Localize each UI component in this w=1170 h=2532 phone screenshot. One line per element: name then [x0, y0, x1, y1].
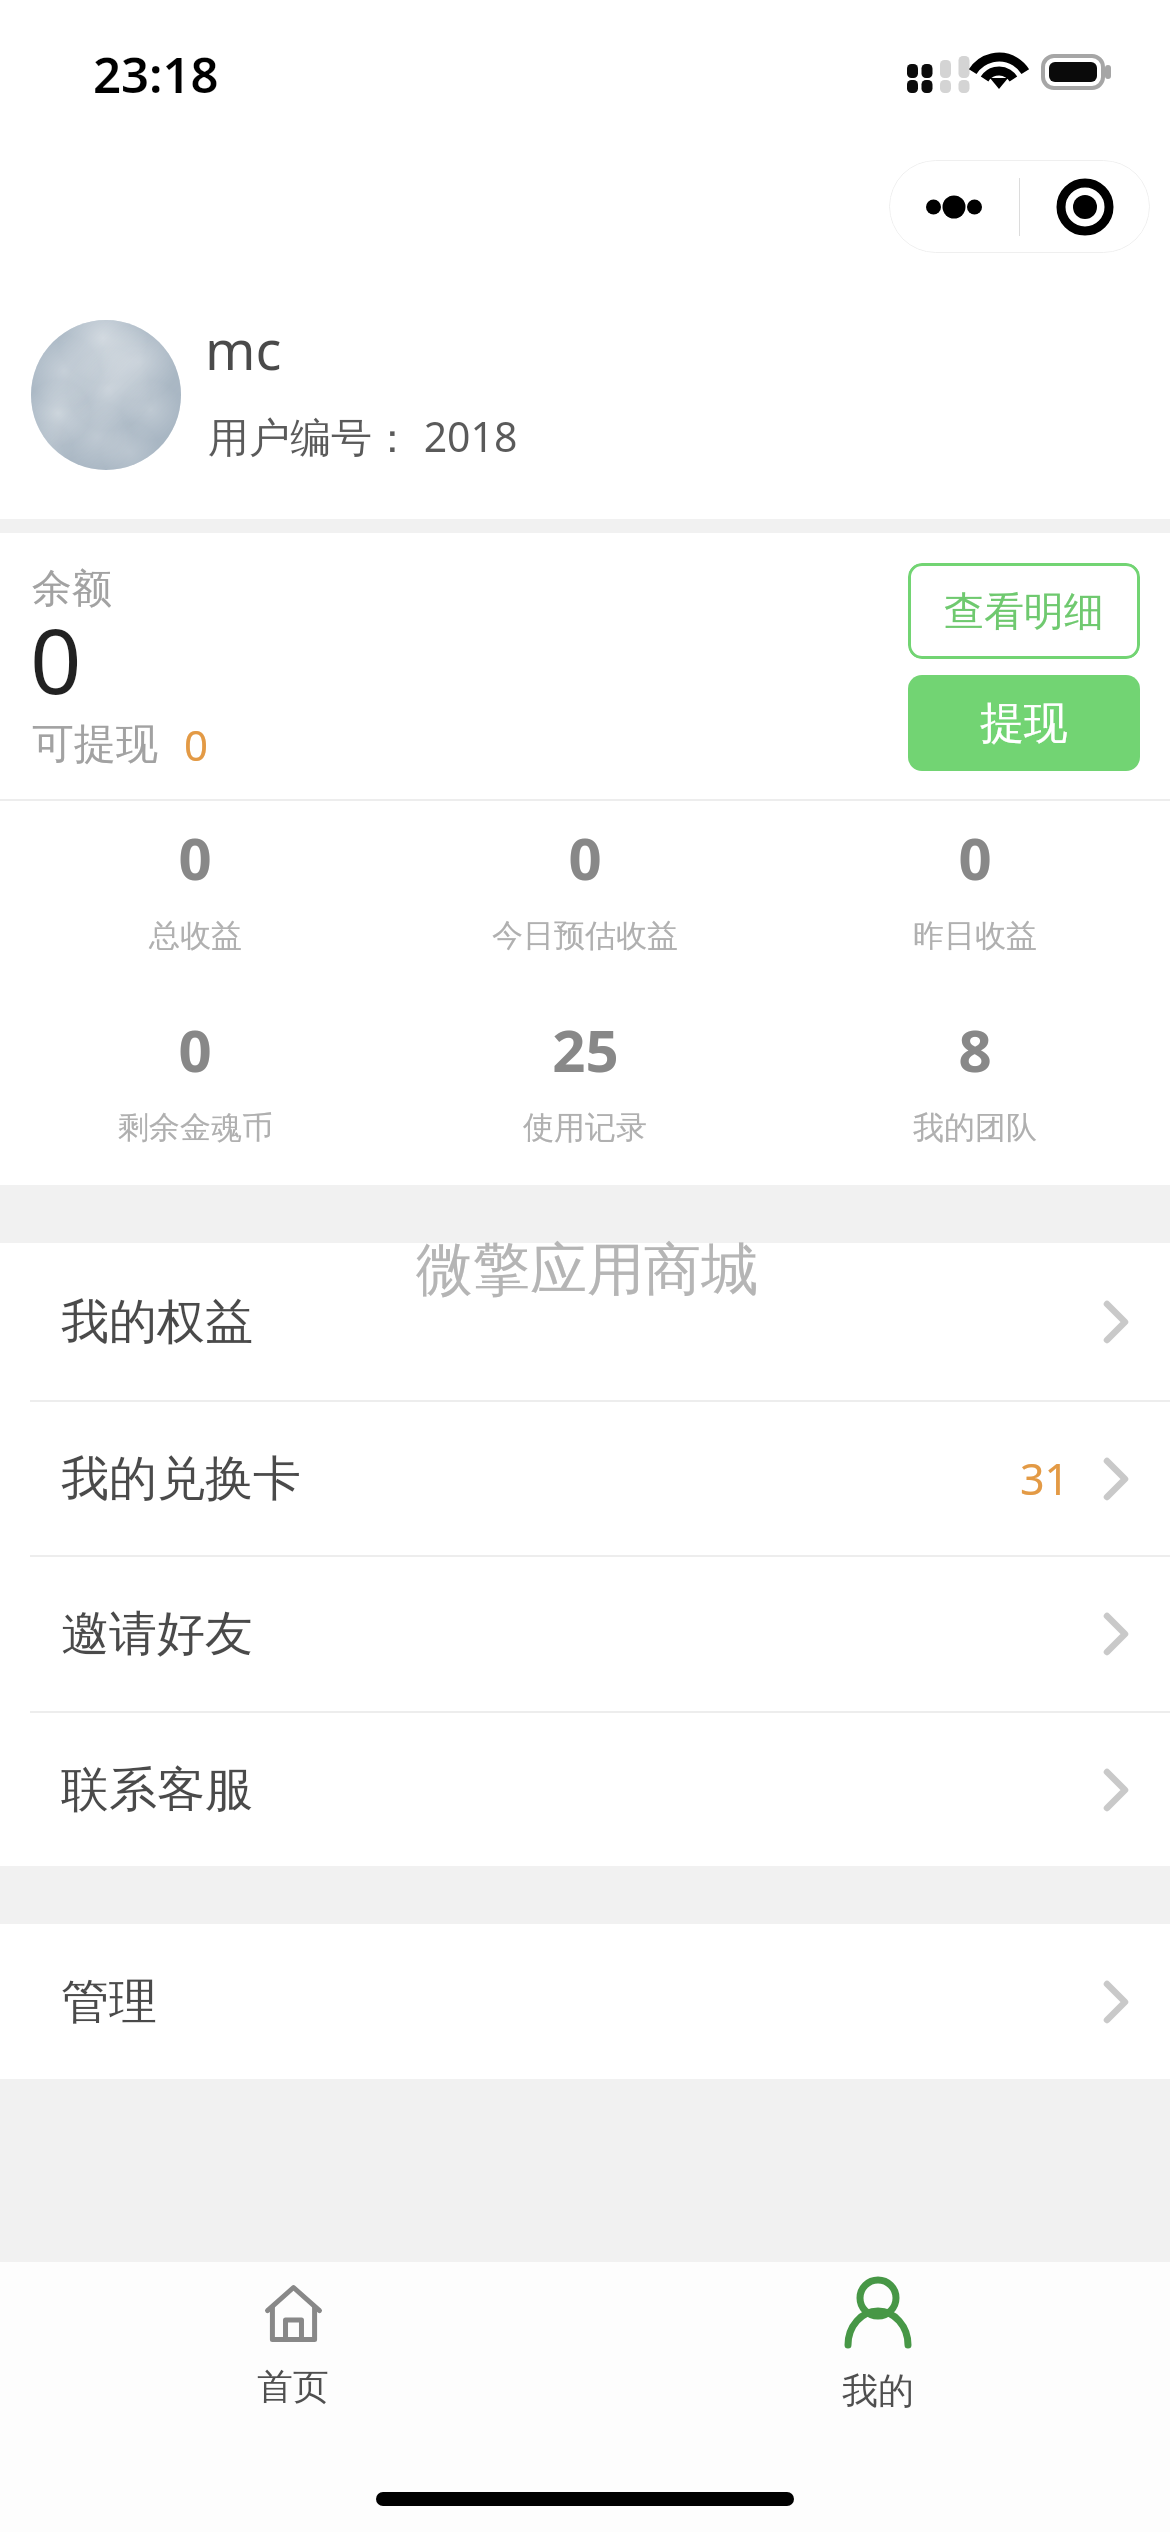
button[interactable]: 0 — [390, 801, 780, 993]
button[interactable]: 我的兑换卡 — [0, 1402, 1170, 1555]
button[interactable]: 查看明细 — [908, 563, 1140, 659]
button[interactable]: 联系客服 — [0, 1713, 1170, 1866]
staticText: 0 — [568, 818, 602, 897]
button[interactable]: 邀请好友 — [0, 1557, 1170, 1711]
button[interactable]: 0 — [780, 801, 1170, 993]
staticText: 我的团队 — [913, 1108, 1037, 1147]
button[interactable]: 管理 — [0, 1924, 1170, 2079]
button[interactable]: 8 — [780, 993, 1170, 1185]
staticText: 0 — [958, 818, 992, 897]
button[interactable]: Close mini program — [1020, 160, 1150, 253]
staticText: 0 — [30, 598, 82, 721]
button[interactable]: More options — [889, 160, 1019, 253]
staticText: 剩余金魂币 — [118, 1108, 273, 1147]
button[interactable]: mc — [0, 275, 1170, 519]
staticText: mc — [205, 312, 282, 386]
staticText: 31 — [1020, 1449, 1070, 1508]
staticText: 微擎应用商城 — [416, 1234, 758, 1306]
staticText: 查看明细 — [944, 586, 1104, 636]
staticText: 0 — [178, 818, 212, 897]
staticText: 邀请好友 — [61, 1604, 253, 1664]
button[interactable]: 我的权益 — [0, 1243, 1170, 1400]
staticText: 0 — [184, 716, 209, 773]
staticText: 23:18 — [93, 41, 219, 108]
button[interactable]: 首页 — [0, 2262, 585, 2477]
button[interactable]: 我的 — [585, 2262, 1170, 2477]
staticText: 可提现 — [32, 718, 158, 771]
button[interactable]: 提现 — [908, 675, 1140, 771]
staticText: 0 — [178, 1010, 212, 1089]
button[interactable]: 25 — [390, 993, 780, 1185]
staticText: 我的兑换卡 — [61, 1449, 301, 1509]
staticText: 25 — [552, 1010, 619, 1089]
staticText: 我的 — [842, 2368, 914, 2413]
staticText: 昨日收益 — [913, 916, 1037, 955]
staticText: 用户编号： 2018 — [208, 408, 518, 464]
staticText: 联系客服 — [61, 1760, 253, 1820]
button[interactable]: 0 — [0, 993, 390, 1185]
staticText: 管理 — [61, 1972, 157, 2032]
staticText: 总收益 — [149, 916, 242, 955]
button[interactable]: 0 — [0, 801, 390, 993]
staticText: 首页 — [257, 2364, 329, 2409]
staticText: 使用记录 — [523, 1108, 647, 1147]
staticText: 我的权益 — [61, 1292, 253, 1352]
staticText: 余额 — [32, 563, 112, 613]
staticText: 提现 — [980, 696, 1068, 751]
staticText: 今日预估收益 — [492, 916, 678, 955]
staticText: 8 — [958, 1010, 992, 1089]
